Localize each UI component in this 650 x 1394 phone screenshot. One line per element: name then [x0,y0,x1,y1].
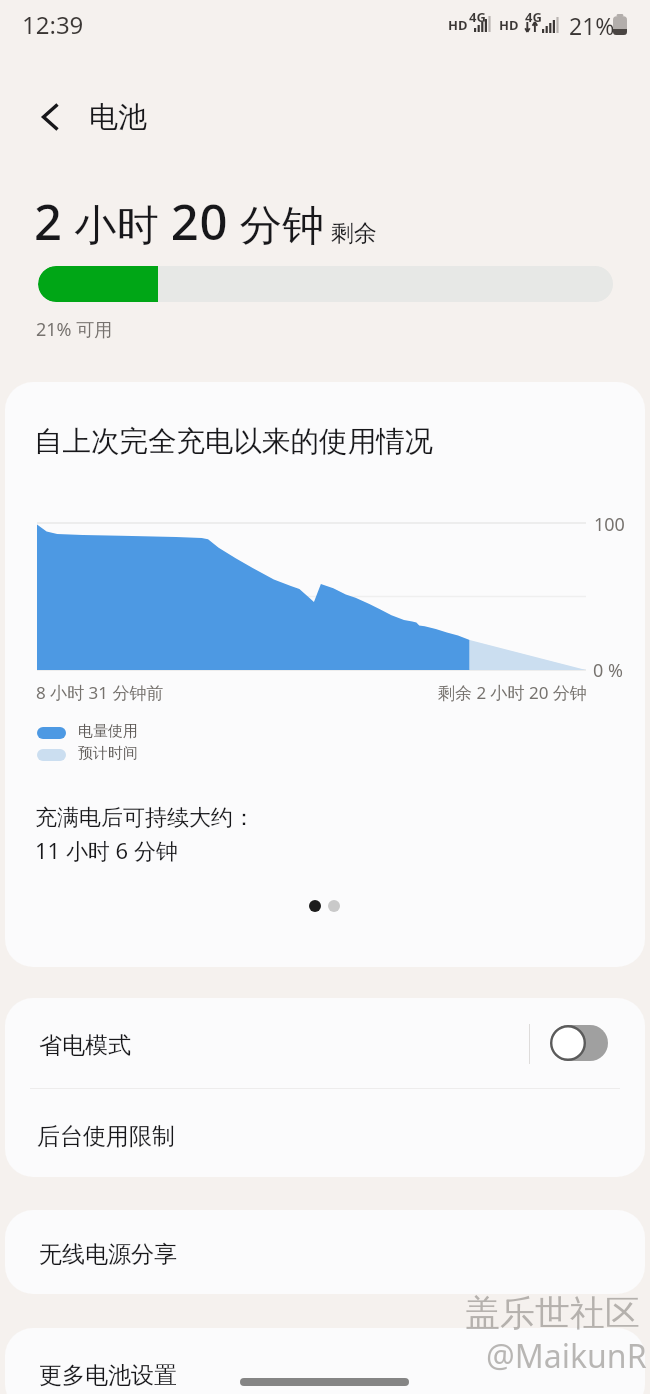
button[interactable]: 省电模式 [5,998,645,1088]
staticText: 无线电源分享 [39,1240,177,1269]
staticText: 自上次完全充电以来的使用情况 [34,424,433,460]
staticText: 11 小时 6 分钟 [35,835,178,865]
staticText: 剩余 2 小时 20 分钟 [438,681,587,704]
staticText: 电量使用 [78,722,138,741]
staticText: 电池 [89,99,147,136]
staticText: 4G [469,8,486,26]
staticText: HD [448,16,468,34]
staticText: 8 小时 31 分钟前 [36,681,164,704]
staticText: 省电模式 [39,1031,131,1060]
button[interactable]: 更多电池设置 [5,1328,645,1394]
staticText: 剩余 [331,219,377,248]
staticText: 0 % [593,658,623,683]
staticText: 21% [569,10,615,41]
button[interactable]: Back [29,96,71,138]
staticText: HD [499,16,519,34]
staticText: 4G [525,8,542,26]
staticText: 12:39 [22,8,84,41]
staticText: 100 [594,512,625,537]
staticText: 充满电后可持续大约： [35,804,255,832]
staticText: 21% 可用 [36,317,113,342]
staticText: 更多电池设置 [39,1361,177,1390]
staticText: 盖乐世社区 [465,1291,640,1335]
button[interactable]: 无线电源分享 [5,1210,645,1294]
button[interactable]: Power saving mode toggle [550,1025,608,1061]
staticText: 2 小时 20 分钟 [34,188,325,255]
staticText: @MaikunR [486,1334,647,1378]
staticText: 后台使用限制 [37,1122,175,1151]
button[interactable]: 后台使用限制 [5,1089,645,1177]
staticText: 预计时间 [78,744,138,763]
